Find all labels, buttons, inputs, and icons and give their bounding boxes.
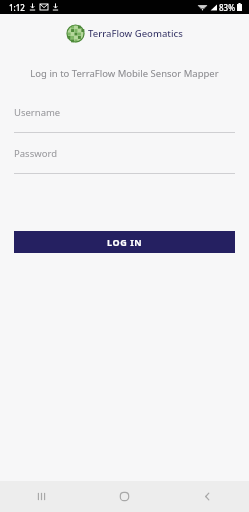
- button[interactable]: LOG IN: [14, 231, 235, 253]
- button[interactable]: Back: [166, 481, 249, 512]
- staticText: Log in to TerraFlow Mobile Sensor Mapper: [14, 67, 235, 80]
- button[interactable]: Recent apps: [0, 481, 83, 512]
- staticText: Username: [14, 106, 61, 119]
- button[interactable]: Home: [83, 481, 166, 512]
- button[interactable]: Username: [0, 106, 249, 133]
- staticText: Password: [14, 147, 57, 160]
- staticText: TerraFlow Geomatics: [88, 27, 183, 40]
- staticText: 83%: [219, 2, 235, 13]
- button[interactable]: Password: [0, 147, 249, 174]
- staticText: 1:12: [9, 2, 25, 13]
- staticText: LOG IN: [107, 236, 143, 248]
